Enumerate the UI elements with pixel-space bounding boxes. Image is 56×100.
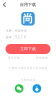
button[interactable]: Share to WeChat: [15, 84, 23, 93]
staticText: 名称：尚品生活: [6, 29, 27, 32]
button[interactable]: 立即下载: [5, 44, 50, 54]
staticText: 官方正版: [8, 56, 20, 60]
button[interactable]: Back: [0, 0, 9, 9]
staticText: 版本：3.2.1 V: [6, 35, 26, 39]
staticText: 下载即代表同意用户协议隐私: [8, 66, 47, 70]
staticText: 安全检测: [36, 56, 48, 60]
staticText: 应用下载: [20, 2, 36, 7]
staticText: 尚: [22, 12, 33, 25]
button[interactable]: Share to QQ: [32, 84, 41, 93]
staticText: 分享给好友: [20, 78, 35, 82]
staticText: 立即下载: [20, 46, 36, 51]
